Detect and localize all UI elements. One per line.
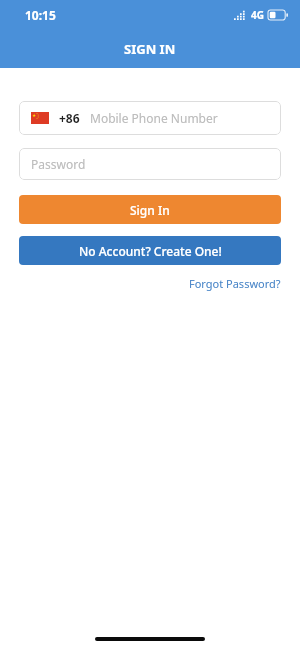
staticText: Sign In (130, 202, 170, 218)
button[interactable]: No Account? Create One! (19, 236, 281, 265)
button[interactable]: Password (19, 148, 281, 180)
other: Country code China (31, 112, 49, 124)
staticText: +86 (59, 110, 80, 126)
staticText: SIGN IN (124, 40, 176, 58)
button[interactable]: Forgot Password? (189, 274, 300, 293)
staticText: Mobile Phone Number (90, 110, 218, 126)
staticText: 10:15 (25, 7, 56, 23)
button[interactable]: Sign In (19, 195, 281, 224)
staticText: 4G (251, 8, 264, 22)
staticText: No Account? Create One! (79, 243, 222, 259)
staticText: Password (31, 156, 86, 172)
button[interactable]: Country code China (19, 101, 281, 135)
staticText: Forgot Password? (189, 276, 281, 291)
